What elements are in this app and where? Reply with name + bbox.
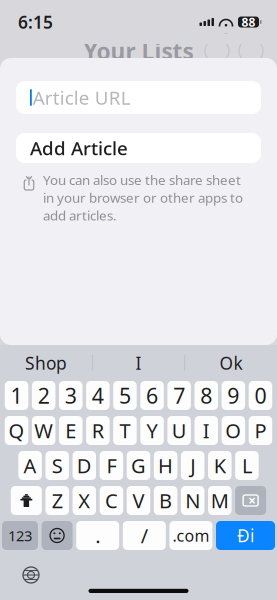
staticText: B <box>159 487 172 514</box>
button[interactable]: 6 <box>140 381 164 410</box>
staticText: 6 <box>146 381 158 410</box>
staticText: 8 <box>200 381 212 410</box>
button[interactable]: N <box>181 486 204 515</box>
button[interactable]: 123 <box>2 521 38 550</box>
button[interactable]: 3 <box>59 381 82 410</box>
button[interactable]: C <box>100 486 123 515</box>
staticText: R <box>92 417 104 444</box>
staticText: D <box>77 452 92 479</box>
button[interactable]: Ok <box>185 346 277 380</box>
button[interactable]: T <box>113 416 137 445</box>
button[interactable]: 0 <box>249 381 272 410</box>
staticText: 123 <box>8 526 32 545</box>
button[interactable]: Q <box>5 416 28 445</box>
staticText: 2 <box>38 381 50 410</box>
button[interactable]: 1 <box>5 381 28 410</box>
button[interactable]: B <box>154 486 177 515</box>
staticText: You can also use the share sheet in your… <box>43 171 243 224</box>
button[interactable]: F <box>100 451 123 480</box>
staticText: 9 <box>227 381 239 410</box>
button[interactable]: J <box>181 451 204 480</box>
staticText: Your Lists <box>83 36 193 66</box>
staticText: I <box>135 351 141 374</box>
staticText: G <box>131 452 146 479</box>
button[interactable]: U <box>167 416 191 445</box>
button[interactable]: 7 <box>167 381 191 410</box>
staticText: Y <box>147 417 158 444</box>
staticText: Add Article <box>30 136 128 160</box>
staticText: 1 <box>11 381 23 410</box>
staticText: X <box>78 487 90 514</box>
button[interactable]: Y <box>140 416 164 445</box>
button[interactable]: .com <box>169 521 212 550</box>
button[interactable]: V <box>127 486 150 515</box>
staticText: K <box>214 452 226 479</box>
staticText: / <box>141 522 148 549</box>
staticText: H <box>158 452 173 479</box>
button[interactable]: E <box>59 416 82 445</box>
button[interactable]: G <box>127 451 150 480</box>
button[interactable]: 8 <box>194 381 218 410</box>
button[interactable]: Add Article <box>16 133 261 163</box>
button[interactable]: L <box>235 451 259 480</box>
staticText: Đi <box>237 524 254 547</box>
button[interactable]: . <box>76 521 119 550</box>
button[interactable]: Shop <box>0 346 92 380</box>
staticText: 5 <box>119 381 131 410</box>
staticText: F <box>106 452 116 479</box>
button[interactable]: 2 <box>32 381 55 410</box>
staticText: J <box>190 452 195 479</box>
staticText: L <box>242 452 252 479</box>
staticText: 4 <box>92 381 104 410</box>
staticText: .com <box>172 525 209 546</box>
staticText: 6:15 <box>18 10 53 33</box>
staticText: 3 <box>65 381 77 410</box>
staticText: Article URL <box>33 85 131 110</box>
button[interactable]: I <box>93 346 184 380</box>
button[interactable]: A <box>18 451 42 480</box>
button[interactable]: P <box>249 416 272 445</box>
staticText: 88 <box>241 14 255 30</box>
button[interactable]: O <box>222 416 245 445</box>
staticText: 7 <box>173 381 185 410</box>
button[interactable]: W <box>32 416 55 445</box>
button[interactable]: R <box>86 416 110 445</box>
button[interactable]: S <box>45 451 69 480</box>
button[interactable]: 5 <box>113 381 137 410</box>
staticText: . <box>95 522 100 549</box>
button[interactable]: I <box>194 416 218 445</box>
staticText: V <box>132 487 144 514</box>
staticText: A <box>24 452 37 479</box>
staticText: S <box>52 452 63 479</box>
staticText: × <box>248 492 256 509</box>
staticText: M <box>211 487 229 514</box>
button[interactable]: Delete <box>235 486 266 515</box>
staticText: U <box>172 417 187 444</box>
button[interactable]: Next keyboard <box>18 562 44 588</box>
button[interactable]: H <box>154 451 177 480</box>
staticText: O <box>225 417 241 444</box>
button[interactable]: / <box>123 521 166 550</box>
staticText: C <box>105 487 118 514</box>
button[interactable]: Z <box>45 486 69 515</box>
button[interactable]: K <box>208 451 231 480</box>
button[interactable]: Emoji <box>42 521 73 550</box>
button[interactable]: M <box>208 486 231 515</box>
staticText: P <box>254 417 266 444</box>
staticText: Shop <box>25 351 67 374</box>
button[interactable]: X <box>72 486 96 515</box>
staticText: T <box>119 417 130 444</box>
staticText: Z <box>52 487 63 514</box>
button[interactable]: 9 <box>222 381 245 410</box>
button[interactable]: Shift <box>11 486 42 515</box>
button[interactable]: Article URL <box>16 81 261 114</box>
staticText: I <box>203 417 210 444</box>
button[interactable]: 4 <box>86 381 110 410</box>
button[interactable]: D <box>72 451 96 480</box>
button[interactable]: Đi <box>216 521 275 550</box>
staticText: Ok <box>220 351 243 374</box>
staticText: E <box>65 417 76 444</box>
staticText: 0 <box>254 381 266 410</box>
staticText: N <box>185 487 200 514</box>
staticText: Q <box>9 417 25 444</box>
